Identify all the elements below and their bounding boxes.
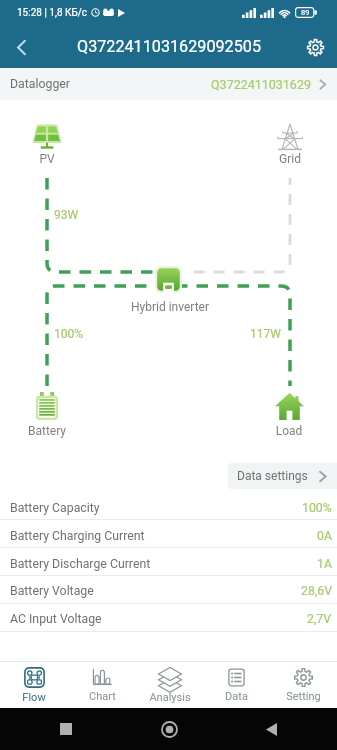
button[interactable]: Data <box>203 662 270 708</box>
staticText: Setting <box>286 690 321 703</box>
button[interactable]: Data settings <box>228 463 337 489</box>
button[interactable]: Back <box>4 30 38 64</box>
button[interactable]: Flow <box>0 662 68 708</box>
staticText: Battery Charging Current <box>10 529 145 543</box>
button[interactable]: AC Input Voltage <box>0 603 337 631</box>
button[interactable]: Battery Capacity <box>0 492 337 520</box>
staticText: 2,7V <box>307 612 332 626</box>
staticText: Q3722411031629 <box>211 77 311 92</box>
staticText: 15:28 | 1,8 КБ/с <box>17 7 88 19</box>
staticText: Load <box>239 424 337 438</box>
staticText: 1A <box>317 557 332 571</box>
staticText: Battery Discharge Current <box>10 557 151 571</box>
staticText: 93W <box>54 208 79 222</box>
staticText: Datalogger <box>10 77 70 91</box>
button[interactable]: Settings <box>298 30 332 64</box>
staticText: Chart <box>89 690 116 703</box>
staticText: AC Input Voltage <box>10 612 102 626</box>
button[interactable]: Datalogger <box>0 68 337 100</box>
button[interactable]: Battery Discharge Current <box>0 548 337 576</box>
staticText: Grid <box>240 152 337 166</box>
staticText: Flow <box>22 691 46 704</box>
staticText: Data <box>225 690 248 703</box>
staticText: Battery Voltage <box>10 584 94 598</box>
staticText: 0A <box>317 529 332 543</box>
button[interactable]: Analysis <box>136 662 203 708</box>
staticText: 89 <box>301 8 310 17</box>
button[interactable]: Battery Voltage <box>0 575 337 603</box>
button[interactable]: Chart <box>68 662 136 708</box>
staticText: PV <box>0 152 97 166</box>
staticText: Analysis <box>149 691 191 704</box>
staticText: Hybrid inverter <box>120 300 220 314</box>
staticText: Battery Capacity <box>10 501 100 515</box>
staticText: 28,6V <box>301 584 332 598</box>
staticText: 100% <box>54 327 84 341</box>
button[interactable]: Battery Charging Current <box>0 520 337 548</box>
staticText: Battery <box>0 424 97 438</box>
staticText: Q3722411031629092505 <box>77 37 261 56</box>
button[interactable]: Setting <box>270 662 337 708</box>
staticText: 100% <box>302 501 332 515</box>
staticText: Data settings <box>237 469 308 483</box>
staticText: 117W <box>250 327 281 341</box>
